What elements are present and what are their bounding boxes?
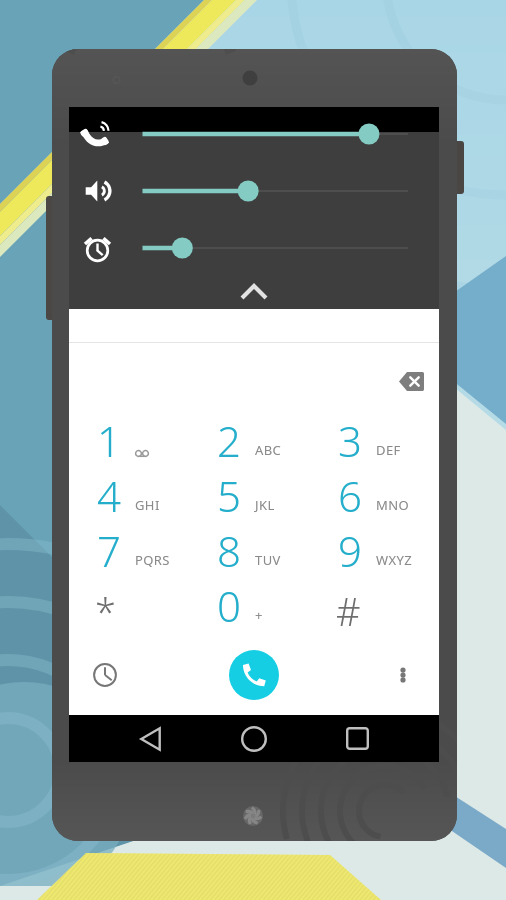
staticText: 4 xyxy=(97,467,121,522)
button[interactable]: Volume slider xyxy=(69,226,439,270)
staticText: 1 xyxy=(97,412,121,467)
staticText: TUV xyxy=(255,551,281,569)
staticText: # xyxy=(336,585,361,637)
staticText: 5 xyxy=(217,467,241,522)
button[interactable]: 8 xyxy=(189,524,312,579)
staticText: 0 xyxy=(217,577,241,632)
button[interactable]: 7 xyxy=(69,524,192,579)
button[interactable]: 6 xyxy=(310,469,433,524)
button[interactable]: Backspace xyxy=(389,359,433,403)
staticText: 8 xyxy=(217,522,241,577)
staticText: 7 xyxy=(97,522,121,577)
button[interactable]: * xyxy=(69,579,192,634)
button[interactable]: Volume slider xyxy=(69,169,439,213)
staticText: * xyxy=(95,585,116,637)
staticText: + xyxy=(255,606,263,624)
button[interactable]: # xyxy=(310,579,433,634)
button[interactable]: 0 xyxy=(189,579,312,634)
staticText: DEF xyxy=(376,441,401,459)
button[interactable]: Call xyxy=(229,650,279,700)
staticText: 3 xyxy=(338,412,362,467)
button[interactable]: Recents xyxy=(329,715,385,762)
staticText: ABC xyxy=(255,441,282,459)
staticText: MNO xyxy=(376,496,410,514)
button[interactable]: 2 xyxy=(189,414,312,469)
button[interactable]: Call history xyxy=(83,653,127,697)
staticText: GHI xyxy=(135,496,160,514)
staticText: PQRS xyxy=(135,551,170,569)
staticText: 6 xyxy=(338,467,362,522)
button[interactable]: Volume slider xyxy=(69,112,439,156)
button[interactable]: 5 xyxy=(189,469,312,524)
staticText: JKL xyxy=(255,496,275,514)
button[interactable]: Home xyxy=(226,715,282,762)
staticText: 9 xyxy=(338,522,362,577)
button[interactable]: 3 xyxy=(310,414,433,469)
button[interactable]: More options xyxy=(381,653,425,697)
button[interactable]: 9 xyxy=(310,524,433,579)
staticText: WXYZ xyxy=(376,551,413,569)
button[interactable]: Expand volume controls xyxy=(69,275,439,309)
staticText: 2 xyxy=(217,412,241,467)
button[interactable]: 4 xyxy=(69,469,192,524)
button[interactable]: Back xyxy=(122,715,178,762)
button[interactable]: 1 xyxy=(69,414,192,469)
